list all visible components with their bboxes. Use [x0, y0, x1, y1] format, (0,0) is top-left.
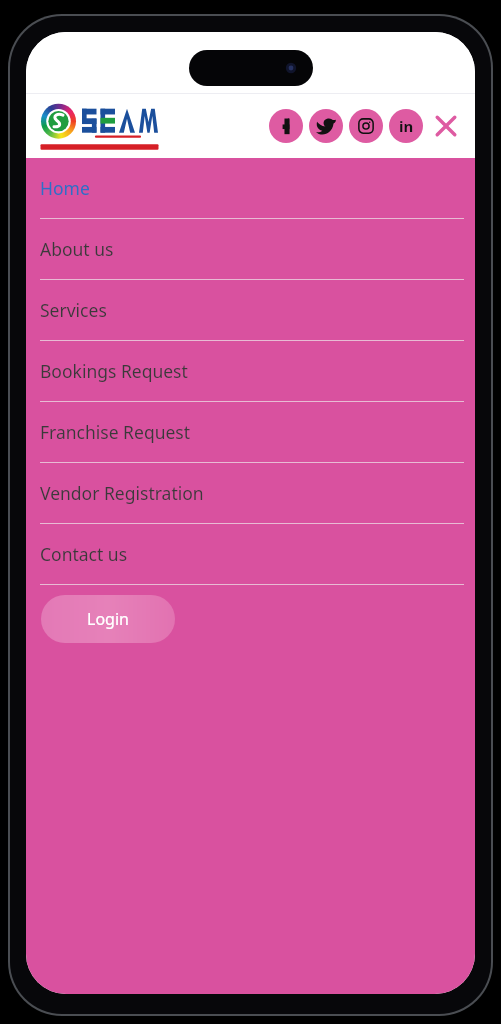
button[interactable]: Franchise Request: [26, 402, 475, 463]
button[interactable]: Instagram: [349, 109, 383, 143]
staticText: Vendor Registration: [40, 481, 204, 505]
staticText: Services: [40, 298, 107, 322]
button[interactable]: Services: [26, 280, 475, 341]
button[interactable]: LinkedIn: [389, 109, 423, 143]
staticText: Home: [40, 176, 90, 200]
staticText: Contact us: [40, 542, 128, 566]
staticText: About us: [40, 237, 114, 261]
button[interactable]: Bookings Request: [26, 341, 475, 402]
button[interactable]: SEAM home: [40, 102, 168, 150]
button[interactable]: Home: [26, 158, 475, 219]
button[interactable]: Contact us: [26, 524, 475, 585]
button[interactable]: Login: [41, 595, 175, 643]
button[interactable]: Close menu: [429, 109, 463, 143]
button[interactable]: Vendor Registration: [26, 463, 475, 524]
button[interactable]: Twitter: [309, 109, 343, 143]
staticText: Franchise Request: [40, 420, 191, 444]
staticText: in: [399, 116, 414, 136]
staticText: Bookings Request: [40, 359, 188, 383]
button[interactable]: About us: [26, 219, 475, 280]
button[interactable]: Facebook: [269, 109, 303, 143]
staticText: Login: [87, 608, 129, 630]
